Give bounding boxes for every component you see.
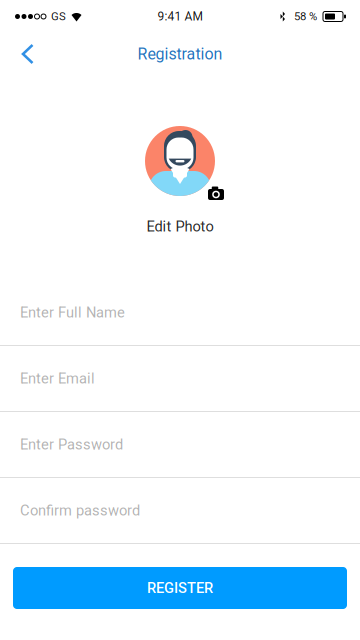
button[interactable]: Edit Photo xyxy=(134,212,225,241)
staticText: 9:41 AM xyxy=(157,9,202,24)
button[interactable]: Confirm password xyxy=(0,478,360,544)
staticText: REGISTER xyxy=(147,579,213,597)
button[interactable]: Enter Password xyxy=(0,412,360,478)
button[interactable]: Enter Full Name xyxy=(0,280,360,346)
staticText: Enter Full Name xyxy=(20,304,125,321)
staticText: Enter Email xyxy=(20,370,95,387)
button[interactable]: REGISTER xyxy=(13,567,347,609)
staticText: Enter Password xyxy=(20,436,123,453)
button[interactable]: Back xyxy=(8,33,48,75)
staticText: GS xyxy=(51,10,66,23)
staticText: 58 % xyxy=(294,10,317,23)
button[interactable]: Enter Email xyxy=(0,346,360,412)
staticText: Edit Photo xyxy=(146,218,213,235)
staticText: Confirm password xyxy=(20,502,140,519)
staticText: Registration xyxy=(137,45,222,63)
